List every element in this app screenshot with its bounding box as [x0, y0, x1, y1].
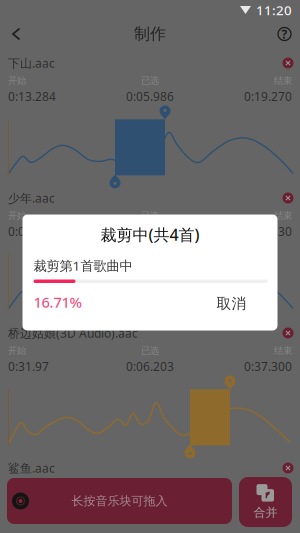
staticText: 下山.aac	[8, 55, 55, 71]
staticText: 0:05.986	[126, 88, 174, 104]
staticText: 0:02.430	[126, 223, 174, 239]
staticText: 开始	[8, 210, 26, 221]
staticText: 已选	[141, 210, 159, 221]
staticText: 0:13.284	[8, 88, 56, 104]
staticText: 0:19.270	[244, 88, 292, 104]
staticText: 制作	[134, 24, 166, 44]
staticText: 16.71%	[33, 292, 81, 312]
staticText: 0:02.430	[244, 223, 292, 239]
button[interactable]: Remove 少年.aac	[278, 190, 298, 206]
button[interactable]: Remove 下山.aac	[278, 55, 298, 71]
staticText: ?	[281, 26, 287, 42]
button[interactable]: Remove 鲨鱼.aac	[278, 460, 298, 476]
button[interactable]: 长按音乐块可拖入	[7, 478, 232, 527]
button[interactable]: 合并	[239, 477, 292, 527]
staticText: 裁剪第1首歌曲中	[33, 257, 132, 274]
staticText: 合并	[253, 505, 277, 520]
staticText: 取消	[216, 294, 246, 312]
staticText: 结束	[274, 75, 292, 86]
staticText: 11:20	[256, 1, 292, 19]
staticText: 0:31.97	[8, 358, 49, 374]
staticText: 开始	[8, 345, 26, 356]
staticText: 已选	[141, 345, 159, 356]
staticText: 鲨鱼.aac	[8, 460, 55, 476]
staticText: 裁剪中(共4首)	[100, 224, 199, 245]
staticText: 结束	[274, 345, 292, 356]
button[interactable]: Remove 桥边姑娘(3D Audio).aac	[278, 325, 298, 341]
staticText: 开始	[8, 75, 26, 86]
button[interactable]: Back	[0, 20, 32, 47]
staticText: 桥边姑娘(3D Audio).aac	[8, 325, 138, 341]
staticText: 结束	[274, 210, 292, 221]
staticText: 长按音乐块可拖入	[71, 494, 167, 508]
button[interactable]: Help	[269, 20, 300, 48]
staticText: 少年.aac	[8, 190, 55, 206]
button[interactable]: 取消	[201, 288, 261, 318]
staticText: 0:37.300	[244, 358, 292, 374]
staticText: 0:00.000	[8, 223, 56, 239]
staticText: 0:06.203	[126, 358, 174, 374]
staticText: 已选	[141, 75, 159, 86]
